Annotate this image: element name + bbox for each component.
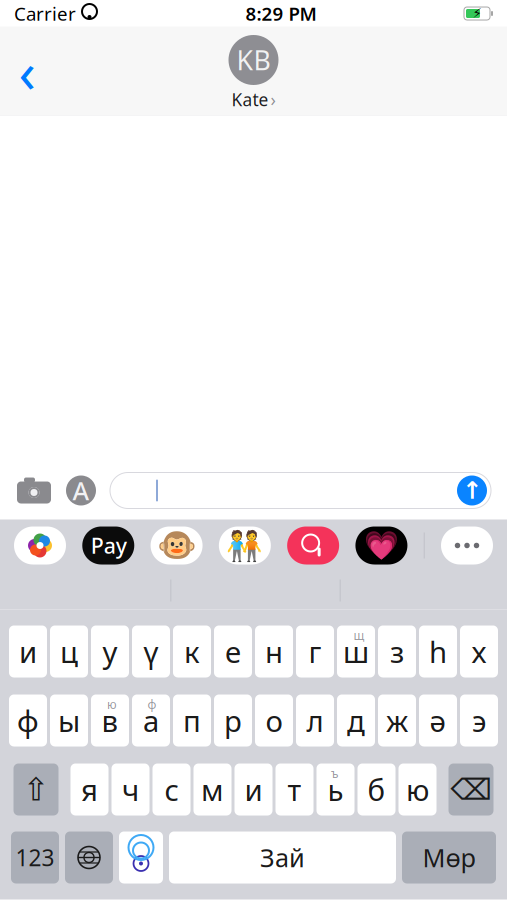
button[interactable]: и: [234, 763, 272, 815]
staticText: ю: [406, 770, 429, 809]
button[interactable]: я: [70, 763, 108, 815]
button[interactable]: Мөр: [402, 831, 496, 883]
staticText: ⌫: [450, 773, 491, 806]
staticText: м: [201, 770, 224, 809]
button[interactable]: щ: [337, 625, 375, 677]
staticText: Carrier: [14, 1, 76, 26]
staticText: Зай: [260, 841, 305, 874]
staticText: 🧑‍🤝‍🧑: [226, 529, 263, 562]
button[interactable]: Memoji Stickers: [219, 526, 271, 564]
staticText: щ: [353, 627, 364, 643]
button[interactable]: п: [173, 694, 211, 746]
button[interactable]: ы: [50, 694, 88, 746]
staticText: KB: [236, 42, 270, 78]
button[interactable]: Apple Pay: [82, 526, 134, 564]
button[interactable]: Send: [457, 475, 487, 505]
button[interactable]: Dictation: [119, 831, 163, 883]
button[interactable]: ю: [91, 694, 129, 746]
staticText: х: [471, 632, 486, 671]
staticText: һ: [429, 632, 447, 671]
button[interactable]: ж: [378, 694, 416, 746]
staticText: Kate: [231, 88, 268, 111]
button[interactable]: Back: [0, 36, 54, 106]
staticText: ф: [17, 701, 39, 740]
button[interactable]: Digital Touch: [355, 526, 407, 564]
staticText: б: [367, 770, 385, 809]
staticText: а: [143, 701, 159, 740]
button[interactable]: Apps: [64, 473, 98, 507]
staticText: т: [287, 770, 301, 809]
staticText: ж: [386, 701, 408, 740]
button[interactable]: т: [275, 763, 313, 815]
staticText: Мөр: [422, 841, 475, 874]
staticText: ъ: [331, 765, 338, 781]
button[interactable]: о: [255, 694, 293, 746]
button[interactable]: э: [460, 694, 498, 746]
button[interactable]: Memoji: [151, 526, 203, 564]
button[interactable]: и: [9, 625, 47, 677]
button[interactable]: Зай: [169, 831, 396, 883]
button[interactable]: у: [91, 625, 129, 677]
button[interactable]: с: [152, 763, 190, 815]
button[interactable]: з: [378, 625, 416, 677]
staticText: 💗: [364, 529, 399, 561]
button[interactable]: ә: [419, 694, 457, 746]
staticText: п: [183, 701, 201, 740]
staticText: ›: [270, 88, 275, 111]
staticText: з: [390, 632, 404, 671]
staticText: A: [72, 474, 89, 507]
staticText: д: [347, 701, 365, 740]
button[interactable]: л: [296, 694, 334, 746]
button[interactable]: ъ: [316, 763, 354, 815]
button[interactable]: р: [214, 694, 252, 746]
staticText: н: [265, 632, 283, 671]
staticText: о: [265, 701, 282, 740]
button[interactable]: Delete: [448, 763, 493, 815]
button[interactable]: More apps: [441, 526, 493, 564]
staticText: ф: [147, 696, 156, 712]
staticText: и: [244, 770, 262, 809]
button[interactable]: м: [193, 763, 231, 815]
button[interactable]: һ: [419, 625, 457, 677]
button[interactable]: ф: [9, 694, 47, 746]
button[interactable]: н: [255, 625, 293, 677]
staticText: 🐵: [157, 527, 197, 564]
staticText: Pay: [91, 531, 127, 560]
button[interactable]: Shift: [13, 763, 58, 815]
button[interactable]: Next keyboard: [65, 831, 113, 883]
button[interactable]: е: [214, 625, 252, 677]
staticText: 123: [15, 842, 54, 872]
staticText: ‹: [18, 34, 35, 108]
button[interactable]: ф: [132, 694, 170, 746]
button[interactable]: б: [357, 763, 395, 815]
staticText: к: [184, 632, 200, 671]
staticText: я: [81, 770, 98, 809]
button[interactable]: х: [460, 625, 498, 677]
button[interactable]: ю: [398, 763, 436, 815]
button[interactable]: ү: [132, 625, 170, 677]
staticText: ы: [58, 701, 80, 740]
staticText: и: [19, 632, 37, 671]
button[interactable]: Numbers: [11, 831, 59, 883]
staticText: 8:29 PM: [245, 1, 316, 26]
button[interactable]: к: [173, 625, 211, 677]
button[interactable]: ч: [111, 763, 149, 815]
button[interactable]: д: [337, 694, 375, 746]
staticText: л: [306, 701, 323, 740]
staticText: ⇧: [22, 771, 49, 808]
button[interactable]: ц: [50, 625, 88, 677]
button[interactable]: г: [296, 625, 334, 677]
staticText: ү: [143, 632, 158, 671]
staticText: е: [225, 632, 241, 671]
staticText: у: [102, 632, 117, 671]
staticText: ⚡︎: [472, 6, 481, 21]
button[interactable]: Camera: [16, 476, 52, 504]
staticText: в: [101, 701, 118, 740]
staticText: ↑: [462, 477, 482, 504]
staticText: э: [472, 701, 486, 740]
button[interactable]: Photos: [14, 526, 66, 564]
staticText: р: [224, 701, 242, 740]
button[interactable]: Images: [287, 526, 339, 564]
staticText: ц: [60, 632, 78, 671]
button[interactable]: KB: [228, 31, 278, 111]
